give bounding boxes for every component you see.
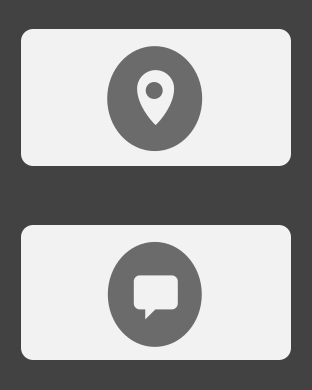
button[interactable]: Messages: [21, 225, 291, 360]
button[interactable]: Location: [21, 29, 291, 166]
